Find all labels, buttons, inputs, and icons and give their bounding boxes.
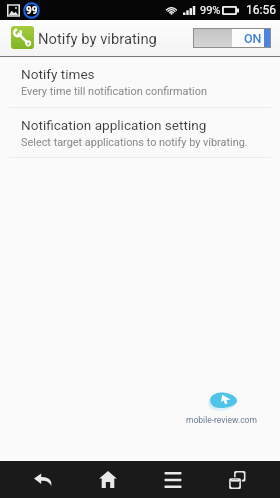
button[interactable]: Notification application setting bbox=[0, 108, 280, 157]
staticText: 99 bbox=[26, 5, 38, 17]
staticText: 16:56 bbox=[246, 3, 276, 17]
button[interactable]: Notify by vibrating on bbox=[193, 28, 271, 48]
button[interactable]: Notify times bbox=[0, 57, 280, 107]
button[interactable]: Back bbox=[10, 461, 75, 498]
staticText: Notify by vibrating bbox=[38, 30, 157, 47]
staticText: Every time till notification confirmatio… bbox=[21, 85, 207, 98]
button[interactable]: Home bbox=[75, 461, 140, 498]
staticText: mobile-review.com bbox=[186, 415, 257, 425]
staticText: Notification application setting bbox=[21, 117, 207, 133]
staticText: Notify times bbox=[21, 66, 95, 82]
button[interactable]: Menu bbox=[140, 461, 205, 498]
staticText: 99% bbox=[200, 4, 221, 17]
staticText: ON bbox=[244, 31, 262, 46]
staticText: Select target applications to notify by … bbox=[21, 136, 248, 149]
button[interactable]: Recent apps bbox=[205, 461, 270, 498]
